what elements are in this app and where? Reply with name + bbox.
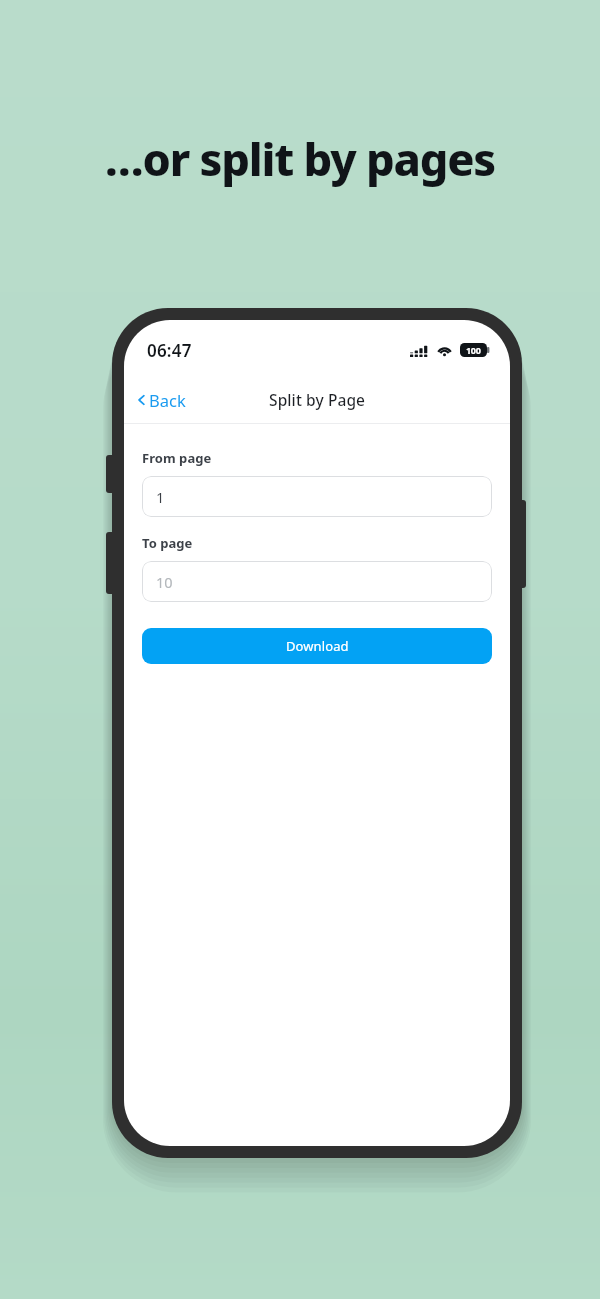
staticText: Download <box>286 637 349 655</box>
staticText: …or split by pages <box>105 128 495 189</box>
staticText: 10 <box>156 572 173 592</box>
staticText: Back <box>149 389 186 411</box>
button[interactable]: Download <box>142 628 492 664</box>
staticText: Split by Page <box>269 389 366 410</box>
staticText: 06:47 <box>147 339 192 362</box>
staticText: 1 <box>156 487 165 507</box>
staticText: 100 <box>466 344 481 356</box>
staticText: From page <box>142 449 212 467</box>
button[interactable]: 10 <box>142 561 492 602</box>
button[interactable]: 1 <box>142 476 492 517</box>
staticText: To page <box>142 534 193 552</box>
button[interactable]: Back <box>124 383 196 417</box>
